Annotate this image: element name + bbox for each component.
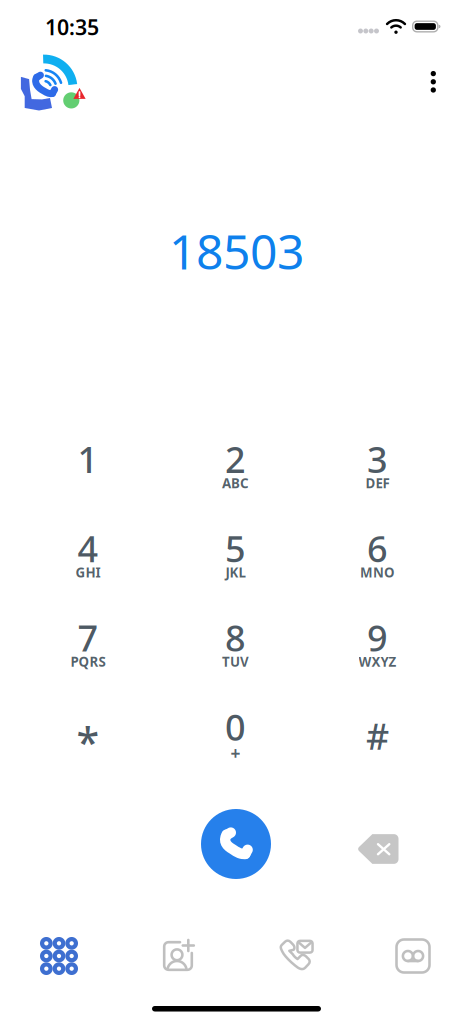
staticText: MNO <box>360 563 395 581</box>
button[interactable]: 1 <box>28 442 148 494</box>
staticText: 4 <box>77 524 98 572</box>
staticText: DEF <box>365 474 389 492</box>
staticText: 7 <box>77 614 98 661</box>
staticText: JKL <box>225 563 245 581</box>
button[interactable]: Should I Answer <box>12 47 95 119</box>
staticText: 18503 <box>169 219 304 283</box>
button[interactable]: 7 <box>28 621 148 673</box>
button[interactable]: More options <box>409 58 457 106</box>
staticText: 1 <box>77 435 98 483</box>
button[interactable]: 4 <box>28 531 148 583</box>
staticText: 10:35 <box>45 13 99 41</box>
staticText: + <box>230 741 240 764</box>
staticText <box>376 742 379 760</box>
button[interactable]: # <box>317 710 437 762</box>
staticText: * <box>76 714 99 769</box>
button[interactable]: 8 <box>175 621 295 673</box>
staticText: 6 <box>367 524 388 572</box>
button[interactable]: Delete <box>345 816 411 882</box>
button[interactable]: Voicemail <box>358 924 468 988</box>
button[interactable]: Dialpad <box>4 924 114 988</box>
button[interactable]: 9 <box>317 621 437 673</box>
staticText <box>86 742 89 760</box>
staticText: 9 <box>367 614 388 661</box>
staticText: 5 <box>225 524 246 572</box>
button[interactable]: Call <box>194 802 278 886</box>
button[interactable]: 5 <box>175 531 295 583</box>
staticText: 2 <box>225 435 246 483</box>
staticText: WXYZ <box>358 653 396 670</box>
button[interactable]: * <box>28 710 148 762</box>
staticText: 0 <box>225 703 246 751</box>
staticText: 8 <box>225 614 246 661</box>
button[interactable]: Calls and messages <box>240 924 350 988</box>
staticText: TUV <box>222 653 249 670</box>
staticText: ABC <box>222 474 249 492</box>
button[interactable]: 6 <box>317 531 437 583</box>
button[interactable]: 0 <box>175 710 295 762</box>
staticText: # <box>366 712 389 760</box>
button[interactable]: Add contact <box>123 924 233 988</box>
staticText: 3 <box>367 435 388 483</box>
staticText: GHI <box>75 563 100 581</box>
button[interactable]: 2 <box>175 442 295 494</box>
staticText: PQRS <box>70 653 105 670</box>
button[interactable]: 3 <box>317 442 437 494</box>
